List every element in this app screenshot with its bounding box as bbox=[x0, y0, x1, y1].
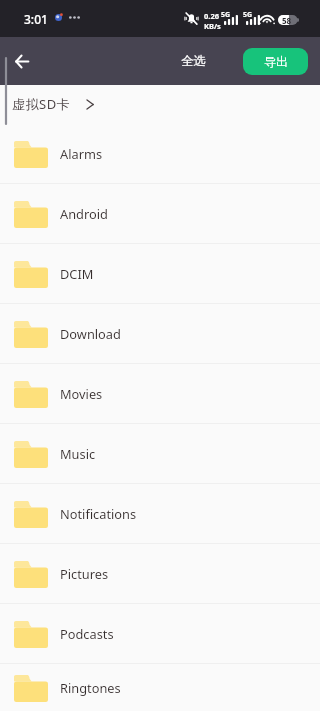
button[interactable]: 虚拟SD卡 bbox=[12, 95, 95, 113]
staticText: 虚拟SD卡 bbox=[12, 95, 71, 113]
button[interactable]: Pictures bbox=[0, 544, 320, 604]
staticText: DCIM bbox=[60, 265, 94, 282]
button[interactable]: Notifications bbox=[0, 484, 320, 544]
button[interactable]: Alarms bbox=[0, 124, 320, 184]
button[interactable]: Back bbox=[7, 46, 37, 76]
staticText: Android bbox=[60, 205, 108, 222]
staticText: 5G bbox=[221, 10, 231, 20]
staticText: Movies bbox=[60, 385, 103, 402]
staticText: 5G bbox=[243, 10, 253, 20]
button[interactable]: Ringtones bbox=[0, 664, 320, 711]
staticText: Pictures bbox=[60, 565, 109, 582]
button[interactable]: Music bbox=[0, 424, 320, 484]
staticText: KB/s bbox=[204, 21, 221, 31]
staticText: Ringtones bbox=[60, 679, 121, 696]
staticText: 0.26 bbox=[204, 11, 219, 21]
staticText: 58 bbox=[282, 15, 292, 25]
staticText: Alarms bbox=[60, 145, 103, 162]
staticText: Download bbox=[60, 325, 121, 342]
button[interactable]: Android bbox=[0, 184, 320, 244]
button[interactable]: 导出 bbox=[243, 48, 308, 75]
staticText: Podcasts bbox=[60, 625, 114, 642]
button[interactable]: Download bbox=[0, 304, 320, 364]
button[interactable]: 全选 bbox=[173, 41, 213, 81]
button[interactable]: Movies bbox=[0, 364, 320, 424]
staticText: 导出 bbox=[264, 54, 288, 69]
staticText: 全选 bbox=[181, 53, 206, 69]
button[interactable]: Podcasts bbox=[0, 604, 320, 664]
staticText: 3:01 bbox=[24, 11, 48, 27]
staticText: Notifications bbox=[60, 505, 137, 522]
staticText: Music bbox=[60, 445, 96, 462]
button[interactable]: DCIM bbox=[0, 244, 320, 304]
